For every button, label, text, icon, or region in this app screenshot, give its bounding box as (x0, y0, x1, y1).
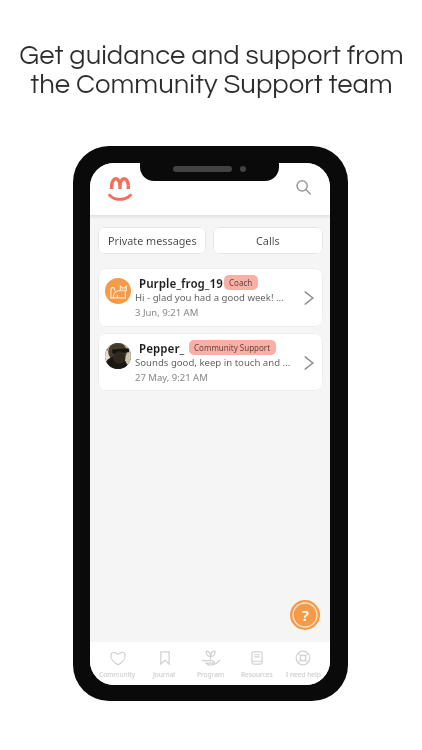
button[interactable]: Journal (141, 648, 188, 679)
staticText: Private messages (108, 233, 197, 248)
staticText: Purple_frog_19 (139, 276, 223, 292)
staticText: Hi - glad you had a good week! ... (135, 291, 284, 304)
staticText: ? (302, 605, 309, 625)
staticText: Community Support (194, 342, 271, 353)
staticText: Coach (229, 277, 253, 288)
button[interactable]: I need help (280, 648, 326, 679)
staticText: Community (99, 670, 136, 679)
button[interactable]: Program (188, 648, 234, 679)
button[interactable]: Private messages (98, 227, 206, 254)
staticText: Resources (241, 670, 273, 679)
button[interactable]: I need help (290, 600, 320, 630)
staticText: Journal (153, 670, 176, 679)
staticText: 3 Jun, 9:21 AM (135, 306, 199, 319)
staticText: Pepper_ (139, 341, 185, 357)
staticText: Get guidance and support from the Commun… (19, 41, 404, 99)
button[interactable]: Community (94, 648, 141, 679)
staticText: Calls (256, 233, 280, 248)
button[interactable]: Purple_frog_19 (98, 268, 323, 327)
staticText: 27 May, 9:21 AM (135, 371, 208, 384)
button[interactable]: Calls (213, 227, 323, 254)
button[interactable]: Resources (234, 648, 280, 679)
staticText: Program (197, 670, 225, 679)
button[interactable]: Pepper_ (98, 333, 323, 391)
button[interactable]: Search (289, 173, 317, 201)
staticText: I need help (286, 670, 321, 679)
staticText: Sounds good, keep in touch and ... (135, 356, 291, 369)
